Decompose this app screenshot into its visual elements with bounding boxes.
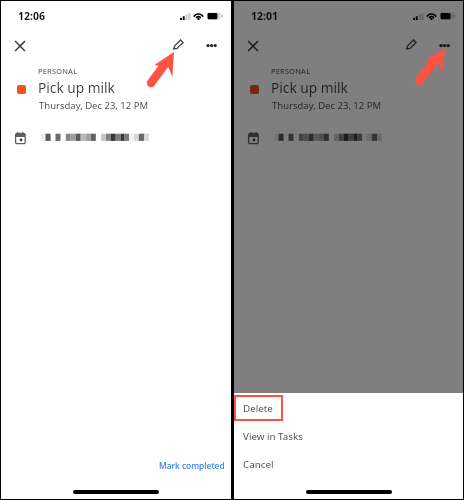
button[interactable]: More options bbox=[201, 34, 223, 56]
staticText: Pick up milk bbox=[38, 78, 115, 97]
staticText: PERSONAL bbox=[38, 66, 78, 76]
button[interactable]: Mark completed bbox=[155, 457, 229, 474]
staticText: Cancel bbox=[243, 458, 274, 471]
button[interactable]: Delete bbox=[234, 395, 463, 423]
staticText: Thursday, Dec 23, 12 PM bbox=[39, 99, 149, 112]
button[interactable]: More options bbox=[434, 34, 456, 56]
staticText: 12:06 bbox=[18, 9, 45, 23]
staticText: Mark completed bbox=[159, 460, 225, 471]
staticText: 12:01 bbox=[251, 9, 278, 23]
button[interactable]: Close bbox=[242, 35, 264, 57]
button[interactable]: Edit task bbox=[401, 34, 423, 56]
button[interactable]: View in Tasks bbox=[234, 423, 463, 451]
button[interactable]: Edit task bbox=[168, 34, 190, 56]
button[interactable]: Cancel bbox=[234, 451, 463, 479]
staticText: PERSONAL bbox=[271, 66, 311, 76]
staticText: Delete bbox=[243, 402, 273, 415]
staticText: View in Tasks bbox=[243, 430, 303, 443]
staticText: Pick up milk bbox=[271, 78, 348, 97]
staticText: Thursday, Dec 23, 12 PM bbox=[272, 99, 382, 112]
button[interactable]: Close bbox=[9, 35, 31, 57]
